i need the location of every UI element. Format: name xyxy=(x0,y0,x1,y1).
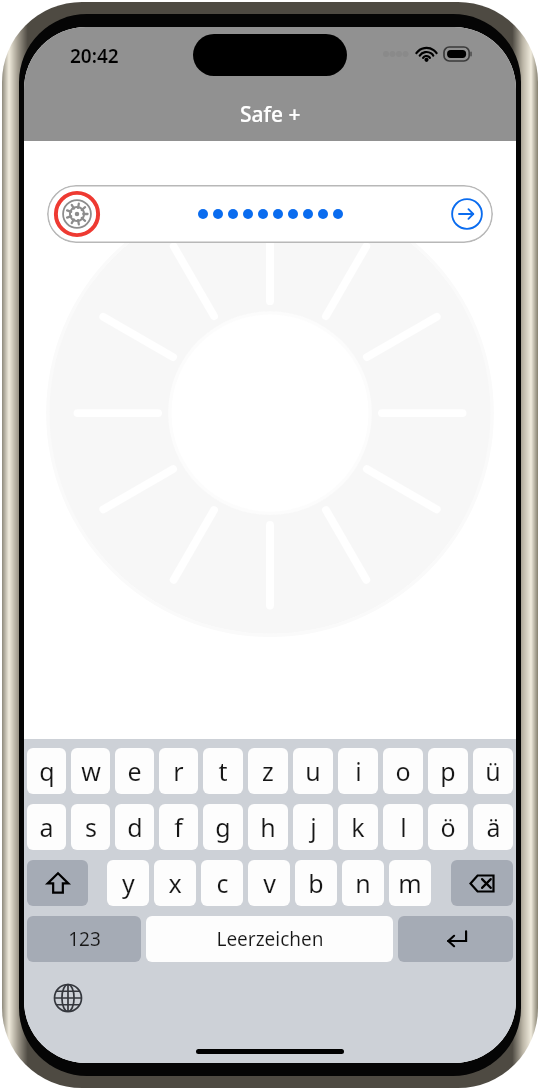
button[interactable]: k xyxy=(338,804,378,850)
button[interactable]: o xyxy=(383,748,423,794)
button[interactable]: i xyxy=(338,748,378,794)
button[interactable]: q xyxy=(27,748,66,794)
staticText: h xyxy=(260,810,276,844)
button[interactable]: v xyxy=(248,860,290,906)
staticText: 123 xyxy=(68,926,101,952)
button[interactable]: Tastatur wechseln xyxy=(53,983,83,1013)
staticText: w xyxy=(81,754,101,788)
staticText: i xyxy=(355,754,362,788)
button[interactable]: p xyxy=(428,748,468,794)
button[interactable]: h xyxy=(248,804,288,850)
staticText: o xyxy=(395,754,411,788)
button[interactable]: z xyxy=(248,748,288,794)
button[interactable]: r xyxy=(159,748,198,794)
button[interactable]: j xyxy=(293,804,333,850)
button[interactable]: c xyxy=(201,860,243,906)
staticText: q xyxy=(39,754,55,788)
staticText: y xyxy=(122,866,135,900)
staticText: a xyxy=(39,810,54,844)
button[interactable]: x xyxy=(154,860,196,906)
staticText: z xyxy=(262,754,274,788)
staticText: v xyxy=(263,866,276,900)
button[interactable]: 123 xyxy=(27,916,141,962)
button[interactable]: Leerzeichen xyxy=(146,916,393,962)
button[interactable]: e xyxy=(115,748,154,794)
button[interactable]: Einstellungen xyxy=(53,190,101,238)
button[interactable]: t xyxy=(203,748,243,794)
button[interactable]: l xyxy=(383,804,423,850)
staticText: d xyxy=(127,810,143,844)
staticText: j xyxy=(310,810,317,844)
staticText: n xyxy=(355,866,371,900)
staticText: c xyxy=(216,866,229,900)
button[interactable]: Eingabe xyxy=(398,916,513,962)
staticText: f xyxy=(174,810,183,844)
staticText: ö xyxy=(440,810,456,844)
button[interactable]: Umschalt xyxy=(27,860,88,906)
button[interactable]: w xyxy=(71,748,110,794)
staticText: k xyxy=(351,810,365,844)
button[interactable]: Einstellungen xyxy=(47,185,493,243)
button[interactable]: u xyxy=(293,748,333,794)
button[interactable]: ä xyxy=(473,804,513,850)
button[interactable]: n xyxy=(342,860,384,906)
staticText: m xyxy=(398,866,422,900)
staticText: 20:42 xyxy=(70,43,119,69)
staticText: Leerzeichen xyxy=(216,926,324,952)
staticText: Safe + xyxy=(240,100,301,129)
staticText: ü xyxy=(485,754,501,788)
staticText: g xyxy=(215,810,231,844)
staticText: t xyxy=(218,754,228,788)
staticText: e xyxy=(127,754,142,788)
staticText: u xyxy=(305,754,321,788)
button[interactable]: m xyxy=(389,860,431,906)
staticText: s xyxy=(85,810,97,844)
staticText: ä xyxy=(486,810,501,844)
button[interactable]: d xyxy=(115,804,154,850)
button[interactable]: ö xyxy=(428,804,468,850)
button[interactable]: a xyxy=(27,804,66,850)
button[interactable]: y xyxy=(107,860,149,906)
staticText: x xyxy=(168,866,182,900)
button[interactable]: Weiter xyxy=(451,198,483,230)
button[interactable]: s xyxy=(71,804,110,850)
staticText: r xyxy=(173,754,184,788)
staticText: l xyxy=(400,810,407,844)
button[interactable]: Löschen xyxy=(451,860,513,906)
button[interactable]: g xyxy=(203,804,243,850)
staticText: p xyxy=(440,754,456,788)
button[interactable]: b xyxy=(295,860,337,906)
button[interactable]: f xyxy=(159,804,198,850)
button[interactable]: ü xyxy=(473,748,513,794)
staticText: b xyxy=(308,866,324,900)
